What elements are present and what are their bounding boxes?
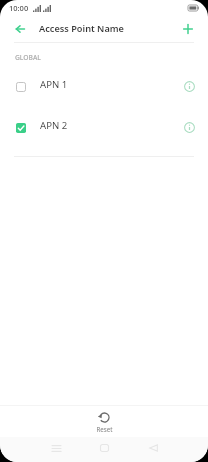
button[interactable]: Back: [6, 16, 33, 41]
staticText: Access Point Name: [39, 22, 124, 35]
staticText: Reset: [96, 425, 113, 433]
button[interactable]: Back: [138, 440, 168, 456]
staticText: 10:00: [9, 3, 29, 13]
button[interactable]: APN 2: [0, 106, 208, 147]
staticText: APN 1: [40, 78, 68, 91]
button[interactable]: Recent apps: [41, 440, 71, 456]
button[interactable]: Reset: [81, 405, 127, 433]
staticText: APN 2: [40, 119, 68, 132]
button[interactable]: Add: [174, 16, 201, 41]
button[interactable]: Home: [89, 440, 120, 456]
button[interactable]: APN details: [176, 114, 202, 140]
button[interactable]: APN details: [176, 73, 202, 99]
staticText: GLOBAL: [15, 53, 41, 62]
button[interactable]: APN 1: [0, 65, 208, 106]
